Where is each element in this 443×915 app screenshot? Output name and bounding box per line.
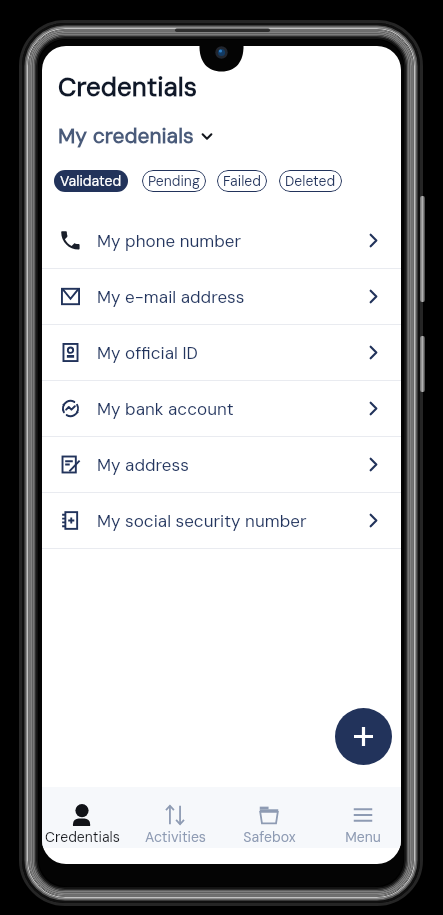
- staticText: Pending: [148, 172, 200, 190]
- button[interactable]: Menu: [320, 787, 401, 848]
- button[interactable]: My bank account: [42, 381, 401, 436]
- staticText: Activities: [145, 828, 206, 846]
- button[interactable]: Deleted: [279, 170, 342, 192]
- staticText: My credenials: [58, 122, 194, 149]
- staticText: My phone number: [97, 230, 242, 252]
- button[interactable]: My phone number: [42, 213, 401, 268]
- staticText: Safebox: [243, 828, 296, 846]
- staticText: My social security number: [97, 510, 307, 532]
- button[interactable]: My address: [42, 437, 401, 492]
- staticText: Credentials: [45, 828, 120, 846]
- button[interactable]: Failed: [217, 170, 267, 192]
- staticText: Deleted: [285, 172, 336, 190]
- button[interactable]: My official ID: [42, 325, 401, 380]
- button[interactable]: Activities: [132, 787, 218, 848]
- staticText: Validated: [60, 172, 122, 190]
- button[interactable]: Pending: [142, 170, 206, 192]
- button[interactable]: Add credential: [335, 708, 392, 765]
- staticText: Credentials: [58, 70, 197, 104]
- staticText: My address: [97, 454, 189, 476]
- staticText: Menu: [345, 828, 381, 846]
- button[interactable]: My credenials: [58, 122, 212, 149]
- button[interactable]: Validated: [54, 170, 128, 192]
- button[interactable]: My social security number: [42, 493, 401, 548]
- staticText: Failed: [223, 172, 261, 190]
- staticText: My bank account: [97, 398, 234, 420]
- staticText: My official ID: [97, 342, 198, 364]
- button[interactable]: My e-mail address: [42, 269, 401, 324]
- button[interactable]: Credentials: [42, 787, 125, 848]
- staticText: My e-mail address: [97, 286, 245, 308]
- button[interactable]: Safebox: [226, 787, 312, 848]
